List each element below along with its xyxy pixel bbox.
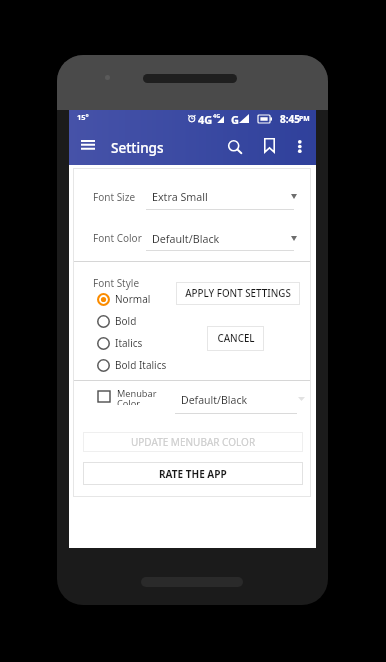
staticText: 4G xyxy=(198,112,213,127)
button[interactable]: RATE THE APP xyxy=(83,462,303,485)
staticText: Normal xyxy=(115,292,151,306)
staticText: Default/Black xyxy=(181,393,248,407)
staticText: 4G xyxy=(213,112,221,119)
button[interactable]: More options xyxy=(288,129,316,164)
button[interactable]: CANCEL xyxy=(207,326,264,351)
staticText: Menubar Color xyxy=(117,387,157,405)
staticText: Bold Italics xyxy=(115,358,167,372)
button[interactable]: UPDATE MENUBAR COLOR xyxy=(83,432,303,452)
button[interactable]: Default/Black xyxy=(150,229,305,259)
button[interactable]: Normal xyxy=(97,290,151,308)
staticText: APPLY FONT SETTINGS xyxy=(185,287,291,300)
staticText: Settings xyxy=(111,139,164,157)
staticText: 15° xyxy=(77,112,89,122)
button[interactable]: Bookmarks xyxy=(255,129,287,164)
staticText: Font Style xyxy=(93,276,140,290)
staticText: Font Size xyxy=(93,190,136,204)
staticText: Italics xyxy=(115,336,143,350)
staticText: Default/Black xyxy=(152,232,220,247)
button[interactable]: Menubar Color xyxy=(98,387,157,405)
staticText: Font Color xyxy=(93,231,142,245)
staticText: G xyxy=(231,112,239,127)
button[interactable]: Extra Small xyxy=(150,188,305,218)
button[interactable]: Search xyxy=(219,129,251,164)
button[interactable]: Bold Italics xyxy=(97,356,167,374)
staticText: CANCEL xyxy=(217,332,255,345)
button[interactable]: APPLY FONT SETTINGS xyxy=(176,282,300,305)
staticText: PM xyxy=(299,114,310,123)
button[interactable]: Open navigation menu xyxy=(72,129,102,164)
staticText: 8:45 xyxy=(280,112,300,126)
button[interactable]: Italics xyxy=(97,334,143,352)
staticText: Extra Small xyxy=(152,190,208,205)
button[interactable]: Bold xyxy=(97,312,137,330)
staticText: RATE THE APP xyxy=(159,467,227,481)
staticText: Bold xyxy=(115,314,137,328)
staticText: UPDATE MENUBAR COLOR xyxy=(131,435,256,449)
